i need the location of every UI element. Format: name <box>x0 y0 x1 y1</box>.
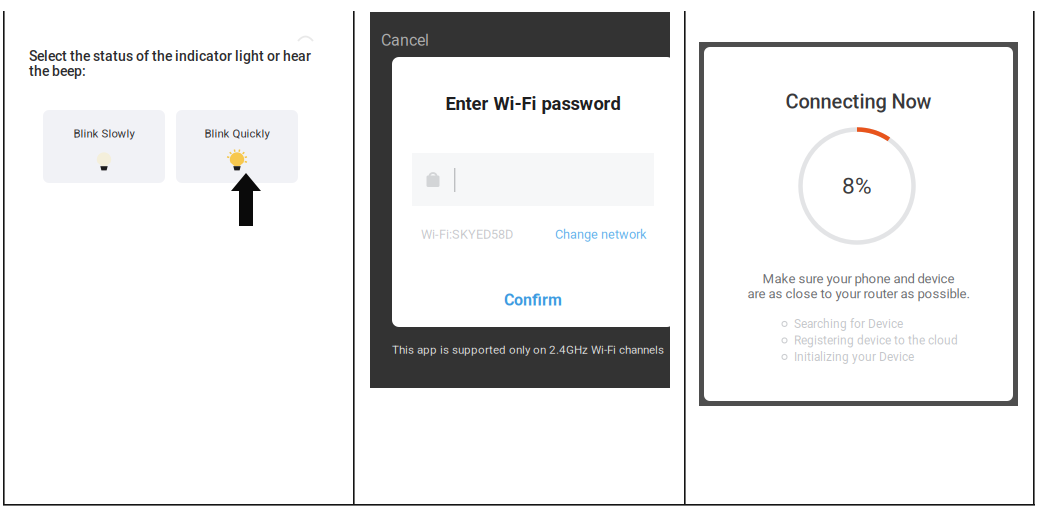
staticText: Change network <box>555 227 646 242</box>
staticText: Searching for Device <box>794 317 903 331</box>
staticText: Cancel <box>381 31 429 50</box>
button[interactable]: Blink Slowly <box>43 110 165 183</box>
staticText: Confirm <box>504 291 562 309</box>
staticText: are as close to your router as possible. <box>747 286 969 301</box>
button[interactable]: Change network <box>551 224 650 245</box>
button[interactable]: Confirm <box>392 282 674 318</box>
staticText: the beep: <box>29 63 86 79</box>
staticText: Select the status of the indicator light… <box>29 48 311 64</box>
staticText: Connecting Now <box>785 90 931 113</box>
staticText: 8% <box>842 173 872 199</box>
staticText: Make sure your phone and device <box>762 271 954 286</box>
staticText: Registering device to the cloud <box>794 333 958 347</box>
staticText: Blink Slowly <box>73 127 134 140</box>
staticText: Enter Wi-Fi password <box>445 93 620 115</box>
button[interactable]: Cancel <box>370 23 441 58</box>
staticText: Blink Quickly <box>204 127 269 140</box>
staticText: This app is supported only on 2.4GHz Wi-… <box>392 343 664 357</box>
staticText: Initializing your Device <box>794 350 914 364</box>
staticText: Wi-Fi:SKYED58D <box>421 227 513 242</box>
button[interactable]: Blink Quickly <box>176 110 298 183</box>
